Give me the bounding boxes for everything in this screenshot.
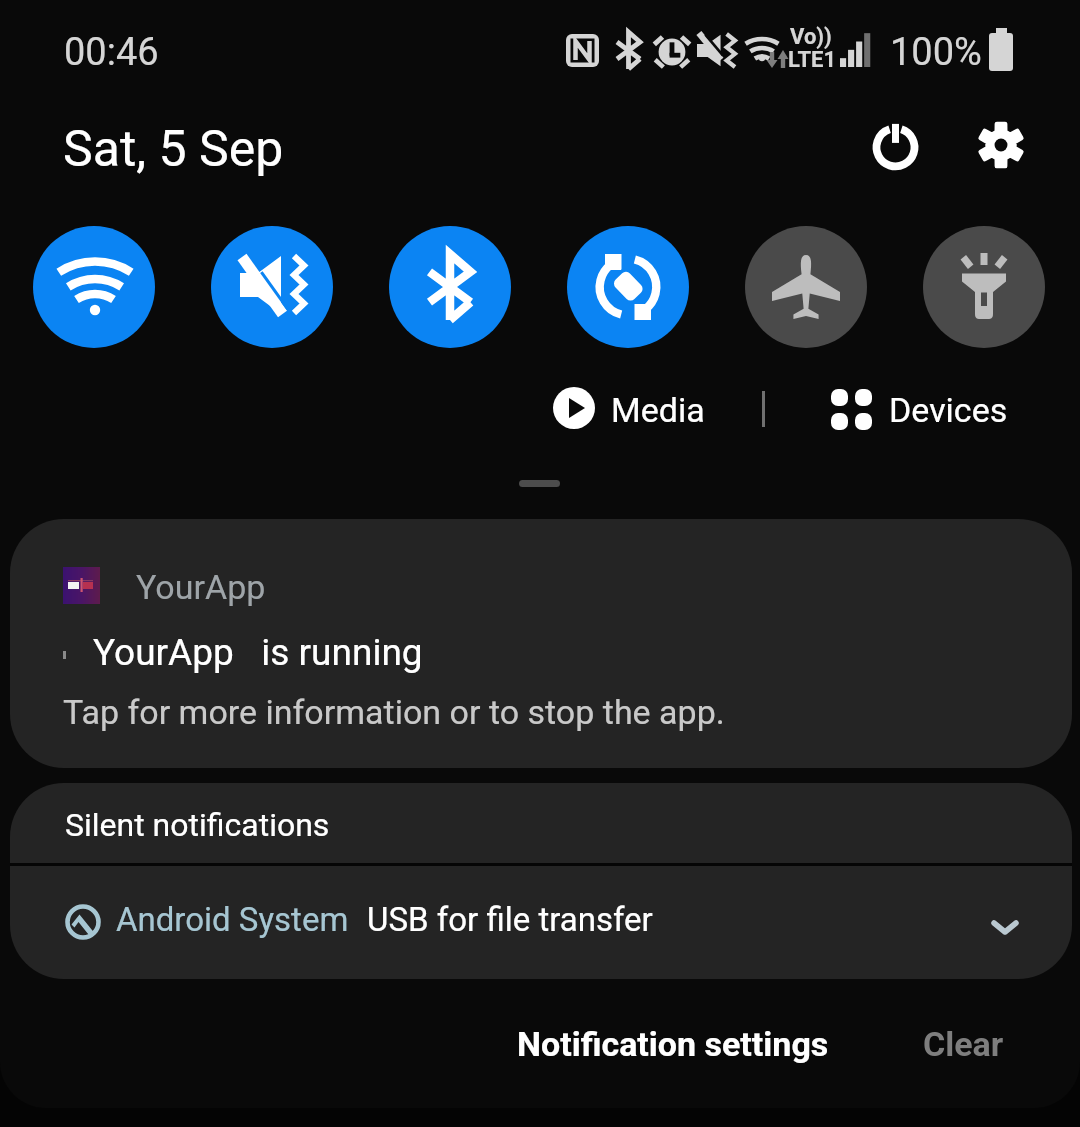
button[interactable]: Airplane mode (745, 226, 867, 348)
button[interactable]: Settings (961, 105, 1041, 185)
staticText: Clear (923, 1024, 1004, 1064)
staticText: YourApp (136, 567, 266, 607)
button[interactable]: Android System (10, 866, 1072, 979)
staticText: 100% (890, 30, 982, 75)
button[interactable]: Sound (211, 226, 333, 348)
staticText: Android System (116, 900, 349, 939)
staticText: YourApp is running (93, 631, 423, 674)
staticText: Devices (889, 390, 1008, 430)
button[interactable]: YourApp (10, 519, 1072, 768)
staticText: Sat, 5 Sep (63, 120, 284, 179)
staticText: Tap for more information or to stop the … (63, 692, 725, 732)
button[interactable]: Clear (900, 1004, 1060, 1076)
button[interactable]: Bluetooth (389, 226, 511, 348)
button[interactable]: Devices (822, 378, 1018, 438)
button[interactable]: Notification settings (490, 1004, 850, 1076)
staticText: 00:46 (64, 30, 159, 75)
staticText: Media (611, 390, 705, 430)
button[interactable]: Power (855, 107, 935, 187)
staticText: Silent notifications (65, 806, 330, 844)
button[interactable]: Media (545, 378, 713, 438)
button[interactable]: Expand quick settings (519, 480, 560, 487)
button[interactable]: Expand notification (957, 893, 1057, 965)
button[interactable]: Silent notifications (10, 783, 1072, 863)
staticText: Vo)) (790, 24, 832, 50)
staticText: LTE1 (788, 47, 837, 73)
staticText: Notification settings (517, 1024, 829, 1064)
button[interactable]: Flashlight (923, 226, 1045, 348)
button[interactable]: Wi-Fi (33, 226, 155, 348)
button[interactable]: Auto rotate (567, 226, 689, 348)
staticText: USB for file transfer (367, 900, 653, 939)
